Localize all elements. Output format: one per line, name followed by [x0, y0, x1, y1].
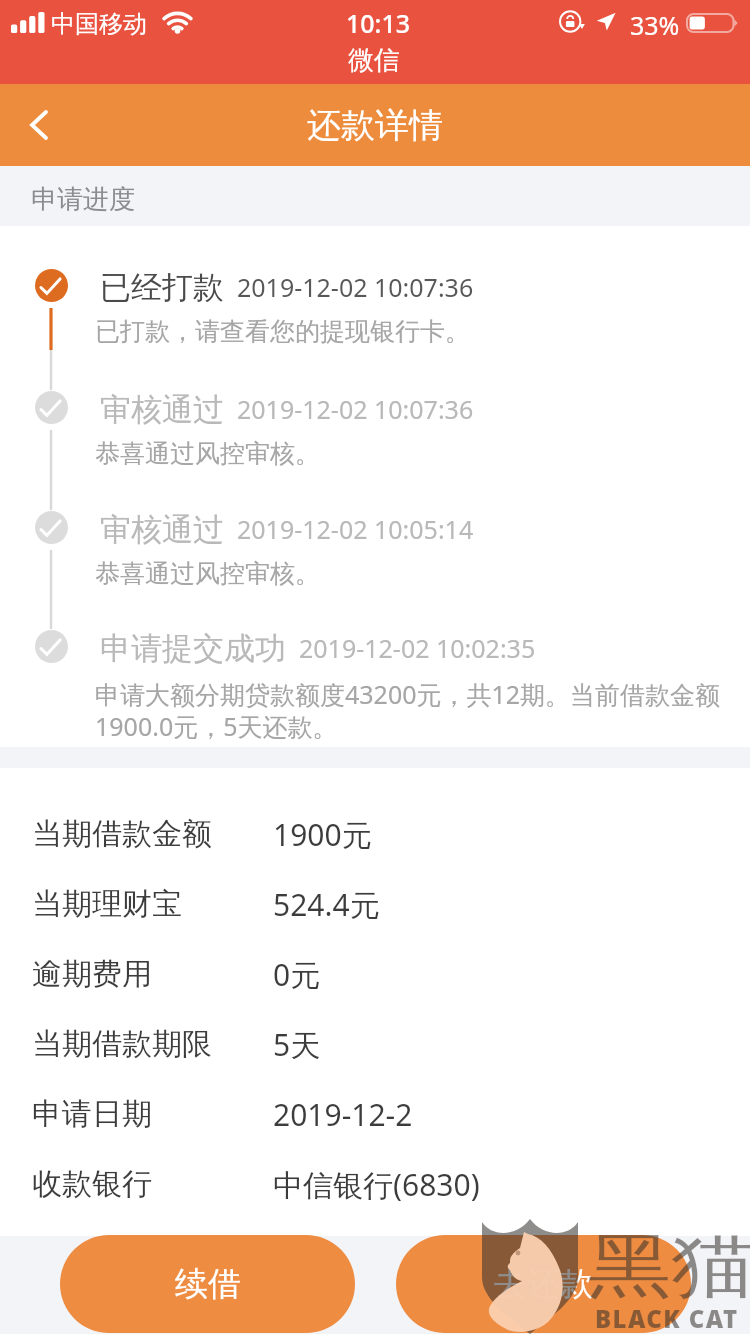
staticText: 审核通过	[100, 510, 224, 549]
staticText: 2019-12-02 10:07:36	[237, 270, 474, 304]
staticText: 5天	[273, 1024, 321, 1065]
staticText: 恭喜通过风控审核。	[95, 438, 735, 469]
staticText: 审核通过	[100, 390, 224, 429]
button[interactable]: 去还款	[396, 1235, 691, 1333]
staticText: 33%	[630, 8, 680, 42]
staticText: 已经打款	[100, 268, 224, 307]
staticText: 申请进度	[31, 183, 135, 216]
staticText: 1900元	[273, 814, 372, 855]
button[interactable]: Back	[0, 84, 78, 166]
staticText: 黑猫	[588, 1223, 750, 1311]
staticText: BLACK CAT	[595, 1302, 739, 1334]
staticText: 逾期费用	[32, 955, 273, 993]
staticText: 524.4元	[273, 884, 380, 925]
staticText: 收款银行	[32, 1165, 273, 1203]
staticText: 当期借款金额	[32, 815, 273, 853]
staticText: 0元	[273, 954, 321, 995]
staticText: 中国移动	[51, 9, 147, 39]
staticText: 申请提交成功	[100, 629, 286, 668]
button[interactable]: 续借	[60, 1235, 355, 1333]
staticText: 微信	[348, 44, 400, 77]
staticText: 续借	[175, 1263, 241, 1305]
staticText: 2019-12-02 10:02:35	[299, 631, 536, 665]
staticText: 申请大额分期贷款额度43200元，共12期。当前借款金额1900.0元，5天还款…	[95, 677, 735, 744]
staticText: 2019-12-02 10:07:36	[237, 392, 474, 426]
staticText: 中信银行(6830)	[273, 1164, 480, 1205]
staticText: 当期理财宝	[32, 885, 273, 923]
staticText: 2019-12-02 10:05:14	[237, 512, 474, 546]
staticText: 已打款，请查看您的提现银行卡。	[95, 316, 735, 347]
staticText: 还款详情	[307, 104, 443, 147]
staticText: 去还款	[494, 1263, 593, 1305]
staticText: 2019-12-2	[273, 1094, 413, 1135]
staticText: 当期借款期限	[32, 1025, 273, 1063]
staticText: 恭喜通过风控审核。	[95, 558, 735, 589]
staticText: 申请日期	[32, 1095, 273, 1133]
staticText: 10:13	[346, 6, 411, 40]
